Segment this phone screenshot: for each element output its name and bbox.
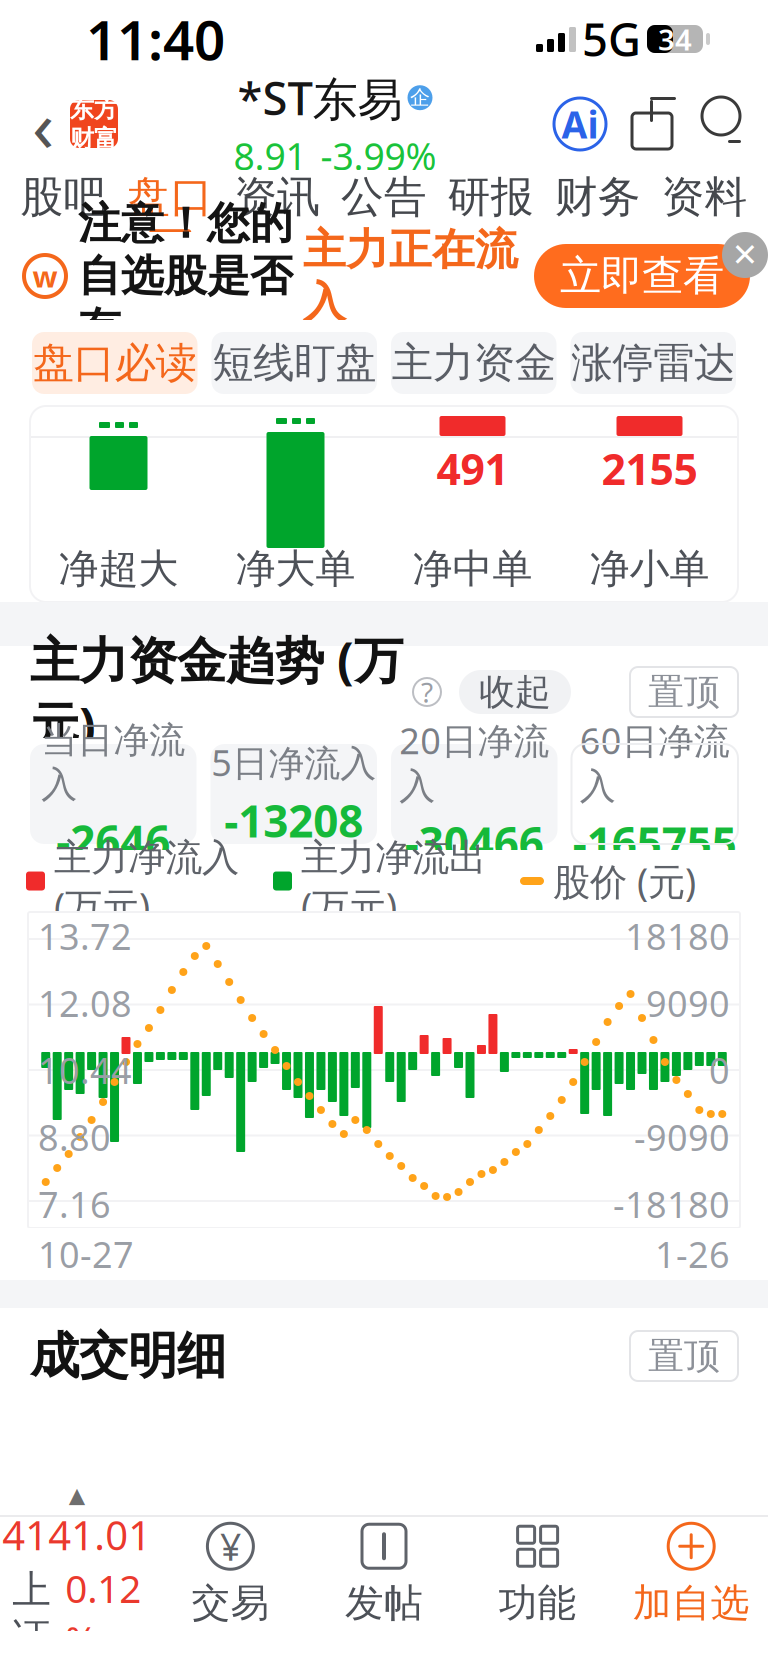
staticText: 0: [709, 1046, 730, 1094]
staticText: 资讯: [234, 171, 320, 223]
staticText: 股价 (元): [553, 856, 696, 906]
button[interactable]: 置顶: [630, 667, 738, 717]
staticText: 东方: [70, 94, 118, 124]
button[interactable]: 发帖: [307, 1518, 461, 1630]
button[interactable]: 当日净流入: [30, 744, 196, 844]
staticText: 8.80: [38, 1113, 111, 1161]
staticText: ‹: [32, 76, 54, 172]
staticText: ✕: [731, 237, 758, 273]
staticText: 13.72: [38, 912, 132, 960]
button[interactable]: 盘口必读: [32, 332, 197, 394]
staticText: 1-26: [655, 1230, 730, 1278]
staticText: 18180: [625, 912, 730, 960]
staticText: *ST东易: [237, 67, 402, 128]
button[interactable]: 主力资金: [391, 332, 556, 394]
staticText: -30466: [405, 813, 544, 872]
button[interactable]: Search: [696, 96, 746, 152]
staticText: 短线盯盘: [212, 338, 376, 388]
staticText: 收起: [479, 670, 551, 714]
staticText: 成交明细: [30, 1326, 226, 1386]
staticText: 10.44: [38, 1046, 132, 1094]
staticText: 当日净流入: [41, 718, 185, 806]
staticText: Ai: [561, 99, 598, 149]
staticText: 491: [436, 440, 508, 497]
staticText: 11:40: [86, 3, 225, 75]
button[interactable]: 盘口: [117, 170, 224, 232]
staticText: 净大单: [235, 544, 355, 593]
button[interactable]: Back: [22, 91, 64, 157]
button[interactable]: 加自选: [614, 1518, 768, 1630]
button[interactable]: East Money: [70, 100, 118, 148]
staticText: 净超大: [58, 544, 178, 593]
button[interactable]: 20日净流入: [391, 744, 557, 844]
staticText: -3.99%: [320, 131, 436, 180]
staticText: 资料: [662, 171, 748, 223]
staticText: 8.91: [233, 131, 306, 180]
staticText: 财务: [555, 171, 641, 223]
button[interactable]: 资料: [651, 170, 758, 232]
button[interactable]: 置顶: [630, 1331, 738, 1381]
staticText: ?: [421, 673, 433, 711]
button[interactable]: w: [0, 197, 518, 355]
staticText: 加自选: [633, 1579, 750, 1627]
staticText: 10-27: [38, 1230, 134, 1278]
button[interactable]: ¥: [154, 1518, 307, 1630]
staticText: 2155: [601, 440, 697, 497]
staticText: 净中单: [412, 544, 532, 593]
staticText: 主力净流出 (万元): [301, 831, 486, 931]
button[interactable]: 收起: [459, 670, 571, 714]
button[interactable]: 公告: [331, 170, 437, 232]
button[interactable]: 研报: [437, 170, 544, 232]
staticText: 发帖: [345, 1579, 423, 1627]
staticText: -165755: [573, 813, 737, 872]
staticText: 5日净流入: [211, 738, 376, 786]
staticText: -9090: [634, 1113, 730, 1161]
button[interactable]: Help about net capital flow: [411, 676, 443, 708]
staticText: 公告: [341, 171, 427, 223]
staticText: -2646: [56, 811, 170, 870]
button[interactable]: 5日净流入: [210, 744, 377, 844]
staticText: 企: [410, 85, 430, 110]
staticText: 立即查看: [560, 251, 724, 301]
staticText: 4141.01: [2, 1508, 151, 1561]
staticText: 交易: [191, 1579, 269, 1627]
button[interactable]: 立即查看: [534, 244, 750, 308]
button[interactable]: 资讯: [224, 170, 331, 232]
staticText: 盘口必读: [33, 338, 197, 388]
staticText: 置顶: [648, 670, 720, 714]
staticText: 主力资金: [392, 338, 556, 388]
button[interactable]: Close promotion: [722, 232, 768, 278]
staticText: 功能: [499, 1579, 577, 1627]
staticText: 12.08: [38, 979, 132, 1027]
staticText: ¥: [220, 1521, 241, 1571]
staticText: w: [32, 256, 57, 295]
staticText: 7.16: [38, 1180, 111, 1228]
button[interactable]: ▲: [0, 1518, 154, 1630]
button[interactable]: 涨停雷达: [570, 332, 736, 394]
button[interactable]: 财务: [544, 170, 651, 232]
button[interactable]: Share: [628, 96, 676, 152]
staticText: 9090: [646, 979, 730, 1027]
button[interactable]: 短线盯盘: [211, 332, 377, 394]
button[interactable]: 60日净流入: [571, 744, 738, 844]
staticText: 0.12%: [65, 1562, 141, 1663]
button[interactable]: 功能: [461, 1518, 614, 1630]
staticText: 研报: [448, 171, 534, 223]
staticText: -13208: [224, 791, 363, 850]
staticText: 主力正在流入: [303, 224, 518, 328]
staticText: 置顶: [648, 1334, 720, 1378]
staticText: 主力资金趋势 (万元): [30, 626, 403, 757]
staticText: 注意！您的自选股是否有: [78, 197, 293, 355]
staticText: 5G: [582, 9, 641, 69]
staticText: ▲: [69, 1483, 85, 1507]
staticText: 34: [658, 19, 692, 58]
staticText: 60日净流入: [580, 716, 730, 808]
staticText: 股吧: [20, 171, 106, 223]
staticText: 主力净流入 (万元): [54, 831, 239, 931]
staticText: 涨停雷达: [571, 338, 735, 388]
staticText: 上证: [12, 1566, 51, 1661]
staticText: -18180: [613, 1180, 730, 1228]
button[interactable]: AI assistant: [552, 96, 608, 152]
staticText: 20日净流入: [399, 716, 549, 808]
button[interactable]: 股吧: [10, 170, 117, 232]
